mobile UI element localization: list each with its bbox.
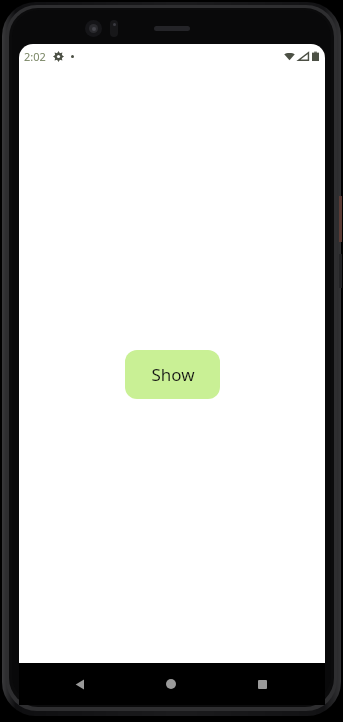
button[interactable]: Recent apps xyxy=(247,669,277,699)
button[interactable]: Home xyxy=(156,669,186,699)
button[interactable]: Show xyxy=(125,350,220,399)
button[interactable]: Back xyxy=(65,669,95,699)
staticText: 2:02 xyxy=(24,49,46,64)
staticText: Show xyxy=(151,363,195,386)
